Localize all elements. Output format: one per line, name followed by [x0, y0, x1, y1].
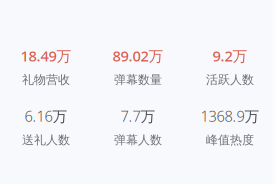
button[interactable]: 1368.9万: [184, 106, 276, 147]
staticText: 6.16万: [24, 106, 67, 126]
button[interactable]: 9.2万: [184, 46, 276, 87]
staticText: 礼物营收: [22, 72, 70, 87]
staticText: 弹幕数量: [114, 72, 162, 87]
staticText: 7.7万: [120, 106, 155, 126]
staticText: 9.2万: [212, 46, 247, 65]
staticText: 活跃人数: [206, 72, 254, 87]
staticText: 18.49万: [20, 46, 71, 65]
button[interactable]: 18.49万: [0, 46, 92, 87]
staticText: 1368.9万: [200, 106, 259, 126]
button[interactable]: 7.7万: [92, 106, 184, 147]
staticText: 弹幕人数: [114, 133, 162, 147]
staticText: 89.02万: [112, 46, 163, 65]
staticText: 送礼人数: [22, 133, 70, 147]
button[interactable]: 6.16万: [0, 106, 92, 147]
staticText: 峰值热度: [206, 133, 254, 147]
button[interactable]: 89.02万: [92, 46, 184, 87]
